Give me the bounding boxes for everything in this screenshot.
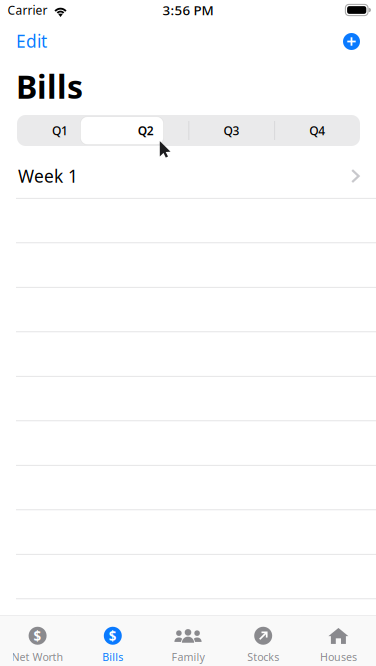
staticText: Week 1: [18, 164, 78, 187]
button[interactable]: Q3: [188, 115, 274, 146]
button[interactable]: Add: [343, 33, 360, 50]
staticText: Stocks: [247, 650, 279, 664]
button[interactable]: Q1: [17, 115, 103, 146]
button[interactable]: Week 1: [0, 154, 376, 199]
staticText: Bills: [102, 650, 123, 664]
staticText: Family: [171, 650, 204, 664]
staticText: Q3: [223, 122, 239, 138]
staticText: Q4: [309, 122, 325, 138]
button[interactable]: $: [0, 616, 75, 666]
staticText: Houses: [320, 650, 357, 664]
button[interactable]: [0, 243, 376, 288]
staticText: Carrier: [7, 2, 47, 18]
button[interactable]: Stocks: [226, 616, 301, 666]
button[interactable]: Houses: [301, 616, 376, 666]
staticText: Bills: [16, 65, 83, 107]
staticText: $: [34, 627, 42, 645]
button[interactable]: Edit: [0, 27, 66, 55]
button[interactable]: $: [75, 616, 150, 666]
button[interactable]: Family: [150, 616, 226, 666]
button[interactable]: [0, 332, 376, 377]
button[interactable]: [0, 510, 376, 555]
staticText: Q2: [138, 122, 154, 138]
button[interactable]: Q2: [103, 115, 189, 146]
button[interactable]: Q4: [274, 115, 360, 146]
staticText: $: [109, 627, 117, 645]
staticText: Q1: [52, 122, 68, 138]
button[interactable]: [0, 421, 376, 466]
staticText: 3:56 PM: [162, 1, 213, 19]
staticText: Edit: [16, 29, 47, 52]
staticText: Net Worth: [12, 650, 64, 664]
